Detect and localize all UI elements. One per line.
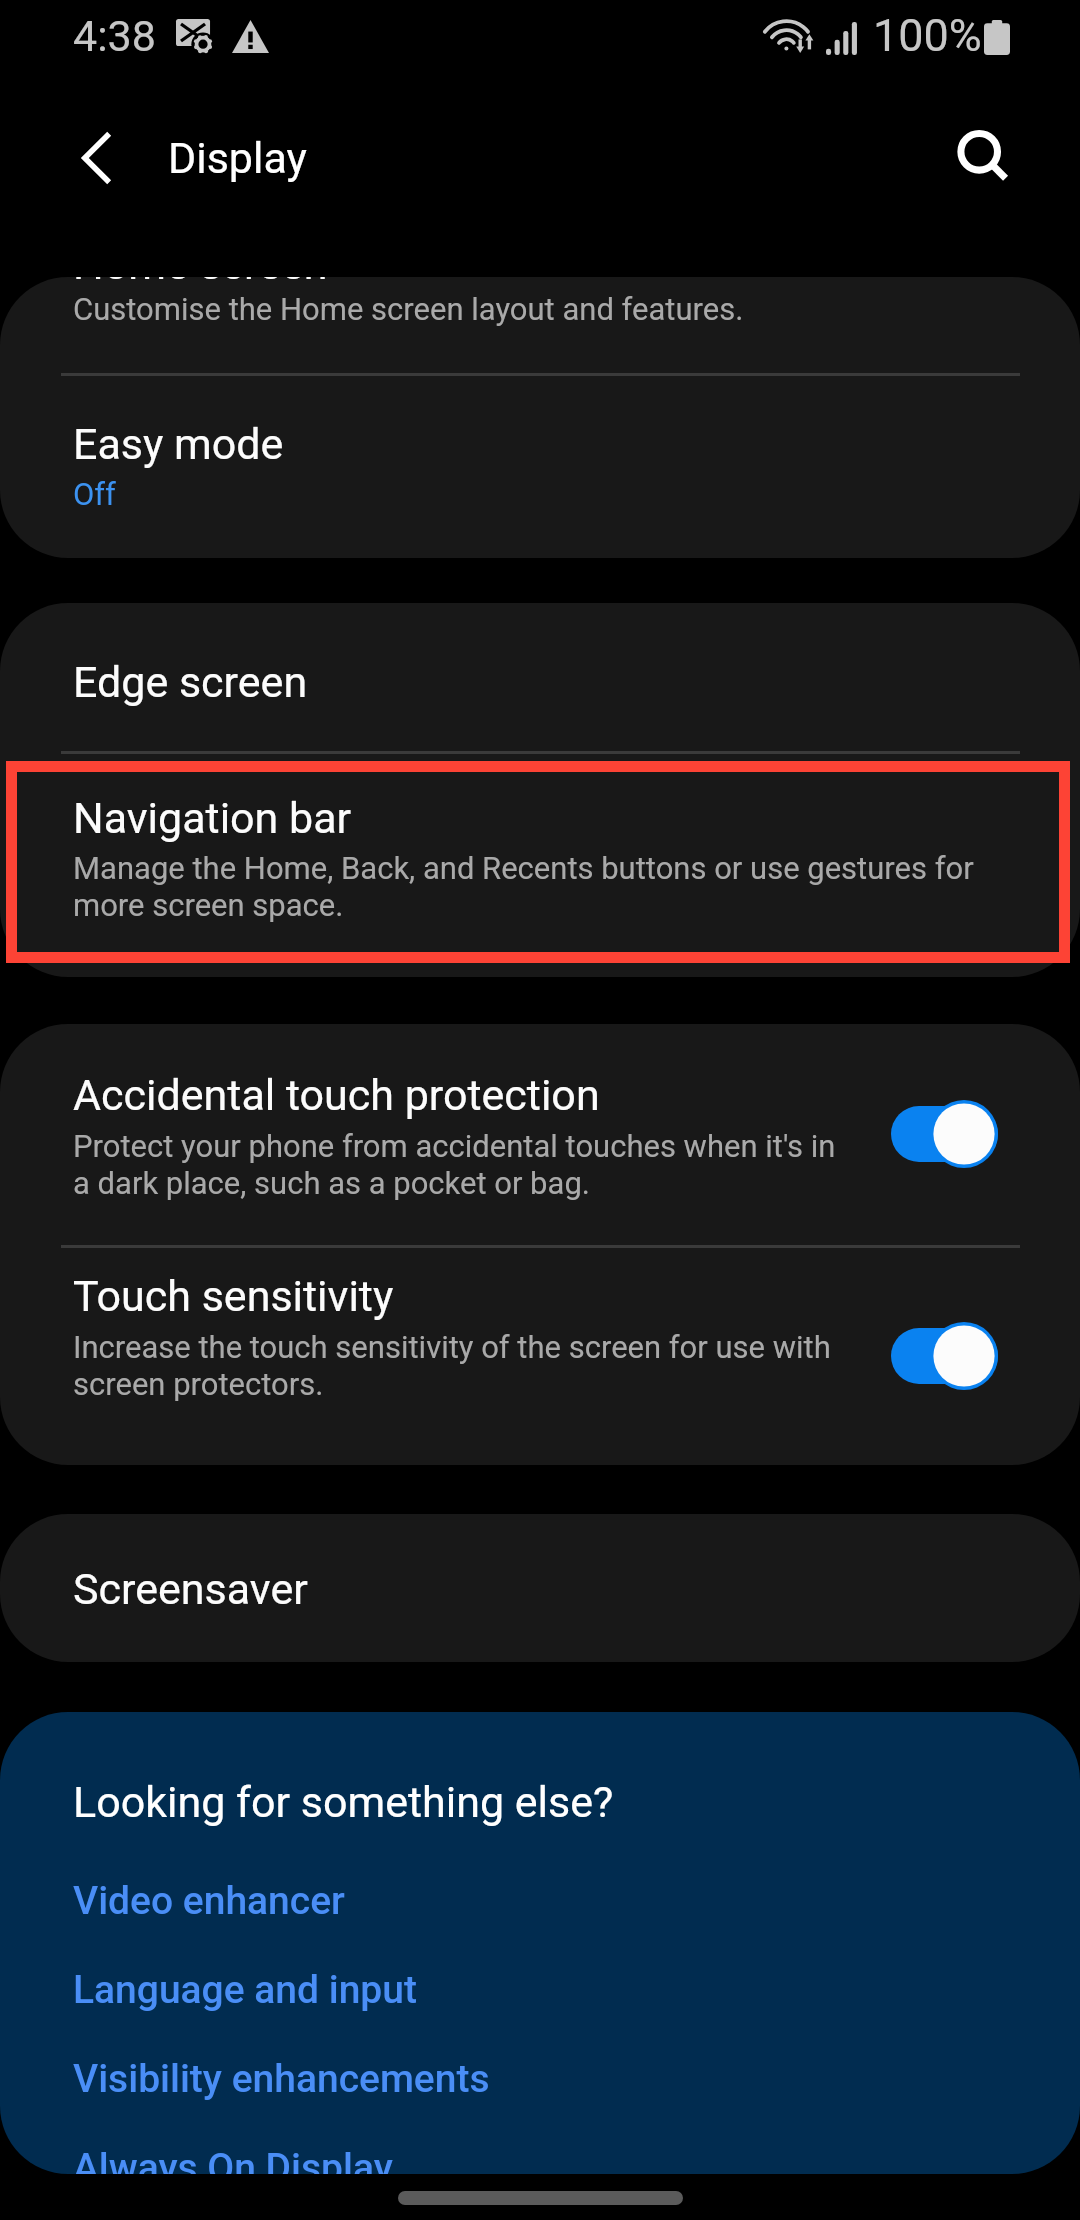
- button[interactable]: Toggle on: [891, 1100, 998, 1168]
- staticText: Customise the Home screen layout and fea…: [73, 291, 744, 328]
- staticText: Visibility enhancements: [73, 2056, 490, 2102]
- staticText: Screensaver: [73, 1564, 308, 1615]
- button[interactable]: Toggle on: [891, 1322, 998, 1390]
- button[interactable]: Navigation bar: [0, 753, 1080, 976]
- staticText: Video enhancer: [73, 1878, 345, 1924]
- staticText: Navigation bar: [73, 793, 352, 844]
- staticText: 100%: [873, 9, 982, 62]
- staticText: Home screen: [73, 277, 328, 290]
- staticText: Accidental touch protection: [73, 1070, 600, 1121]
- button[interactable]: Easy mode: [0, 373, 1080, 557]
- staticText: Easy mode: [73, 419, 284, 470]
- staticText: Edge screen: [73, 657, 308, 708]
- button[interactable]: Language and input: [0, 1965, 1080, 2035]
- button[interactable]: Video enhancer: [0, 1876, 1080, 1946]
- button[interactable]: Screensaver: [0, 1514, 1080, 1662]
- staticText: Display: [168, 133, 307, 184]
- button[interactable]: Visibility enhancements: [0, 2054, 1080, 2124]
- staticText: Always On Display: [73, 2145, 393, 2174]
- button[interactable]: Navigate up: [52, 114, 140, 202]
- button[interactable]: Always On Display: [0, 2143, 1080, 2174]
- staticText: Manage the Home, Back, and Recents butto…: [73, 850, 1003, 924]
- staticText: Touch sensitivity: [73, 1271, 394, 1322]
- staticText: Looking for something else?: [73, 1777, 614, 1828]
- staticText: 4:38: [73, 11, 156, 62]
- staticText: Protect your phone from accidental touch…: [73, 1128, 845, 1202]
- button[interactable]: Touch sensitivity: [0, 1225, 1080, 1464]
- button[interactable]: Search: [940, 115, 1028, 203]
- staticText: Increase the touch sensitivity of the sc…: [73, 1329, 845, 1403]
- staticText: Off: [73, 476, 116, 513]
- staticText: Language and input: [73, 1967, 417, 2013]
- button[interactable]: Home screen: [0, 277, 1080, 371]
- button[interactable]: Edge screen: [0, 603, 1080, 751]
- button[interactable]: Accidental touch protection: [0, 1024, 1080, 1246]
